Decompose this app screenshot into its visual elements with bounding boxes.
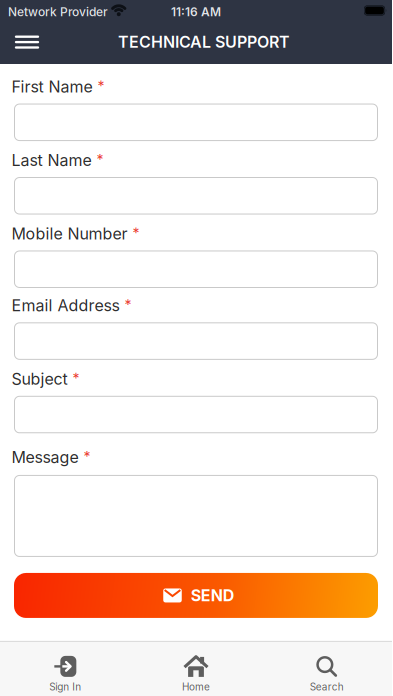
textField[interactable] <box>24 259 368 290</box>
textField[interactable] <box>24 113 368 143</box>
staticText: * <box>72 370 79 387</box>
staticText: Home <box>182 681 210 693</box>
button[interactable]: Home <box>131 656 261 693</box>
textField[interactable] <box>24 186 368 216</box>
staticText: Message <box>11 448 78 467</box>
staticText: Email Address <box>11 296 119 315</box>
staticText: Mobile Number <box>11 224 127 243</box>
staticText: * <box>83 448 90 465</box>
staticText: * <box>124 297 131 314</box>
button[interactable]: SEND <box>14 573 378 618</box>
staticText: Search <box>310 681 344 693</box>
staticText: Network Provider <box>8 5 108 19</box>
button[interactable]: Sign In <box>0 656 131 693</box>
button[interactable]: Search <box>261 656 392 693</box>
staticText: Subject <box>11 369 67 389</box>
staticText: TECHNICAL SUPPORT <box>118 32 290 52</box>
staticText: * <box>96 151 103 168</box>
textField[interactable] <box>24 405 368 435</box>
staticText: SEND <box>191 586 235 605</box>
staticText: First Name <box>11 77 92 96</box>
staticText: Sign In <box>49 681 81 693</box>
staticText: 11:16 AM <box>171 5 221 19</box>
staticText: Last Name <box>11 150 91 170</box>
textField[interactable] <box>24 331 368 361</box>
button[interactable]: Menu <box>7 22 47 62</box>
staticText: * <box>132 225 139 242</box>
staticText: * <box>97 78 104 95</box>
